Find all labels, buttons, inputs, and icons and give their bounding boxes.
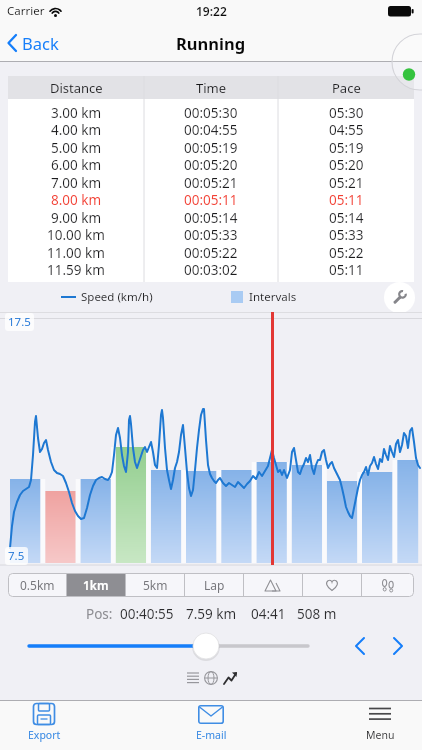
staticText: 00:40:55: [120, 605, 174, 623]
staticText: 00:04:55: [184, 121, 238, 139]
staticText: Speed (km/h): [81, 289, 153, 305]
button[interactable]: [185, 669, 239, 687]
staticText: 00:03:02: [184, 261, 238, 279]
staticText: Back: [22, 32, 59, 54]
staticText: 11.59 km: [47, 261, 105, 279]
staticText: 6.00 km: [51, 156, 102, 174]
staticText: Export: [28, 728, 61, 742]
staticText: 4.00 km: [51, 121, 102, 139]
staticText: 7.5: [8, 548, 25, 564]
staticText: 7.59 km: [186, 605, 237, 623]
staticText: 19:22: [196, 3, 227, 19]
staticText: 11.00 km: [47, 244, 105, 262]
staticText: Carrier: [7, 3, 45, 19]
staticText: 508 m: [297, 605, 337, 623]
staticText: 05:21: [329, 174, 364, 192]
staticText: Menu: [366, 728, 395, 742]
staticText: 17.5: [8, 314, 31, 330]
staticText: 10.00 km: [47, 226, 105, 244]
staticText: 05:30: [329, 104, 364, 122]
staticText: 9.00 km: [51, 209, 102, 227]
button[interactable]: [0, 632, 422, 660]
button[interactable]: 1km: [67, 573, 125, 597]
button[interactable]: Export: [18, 702, 70, 748]
staticText: 05:33: [329, 226, 364, 244]
staticText: 7.00 km: [51, 174, 102, 192]
staticText: 00:05:14: [184, 209, 238, 227]
staticText: 05:19: [329, 139, 364, 157]
staticText: 3.00 km: [51, 104, 102, 122]
staticText: 05:11: [329, 261, 364, 279]
staticText: 00:05:19: [184, 139, 238, 157]
staticText: 05:22: [329, 244, 364, 262]
button[interactable]: Back: [6, 28, 59, 58]
staticText: Pace: [332, 79, 361, 97]
button[interactable]: [303, 573, 361, 597]
staticText: 05:11: [329, 191, 364, 209]
staticText: 04:41: [251, 605, 286, 623]
staticText: 00:05:21: [184, 174, 238, 192]
staticText: 05:20: [329, 156, 364, 174]
staticText: 1km: [83, 577, 109, 593]
staticText: 00:05:30: [184, 104, 238, 122]
button[interactable]: [362, 573, 414, 597]
button[interactable]: 5km: [126, 573, 184, 597]
staticText: 05:14: [329, 209, 364, 227]
staticText: 0.5km: [20, 577, 55, 593]
staticText: 04:55: [329, 121, 364, 139]
staticText: Lap: [204, 577, 225, 593]
staticText: 00:05:11: [184, 191, 238, 209]
staticText: 5km: [143, 577, 168, 593]
button[interactable]: Lap: [185, 573, 243, 597]
button[interactable]: E-mail: [185, 702, 237, 748]
staticText: Distance: [50, 79, 103, 97]
staticText: Running: [176, 32, 246, 54]
staticText: Pos:: [86, 605, 113, 623]
button[interactable]: Menu: [354, 702, 406, 748]
staticText: Intervals: [249, 289, 297, 305]
staticText: Time: [196, 79, 227, 97]
staticText: 8.00 km: [51, 191, 102, 209]
staticText: 00:05:20: [184, 156, 238, 174]
button[interactable]: [244, 573, 302, 597]
staticText: 00:05:33: [184, 226, 238, 244]
staticText: 00:05:22: [184, 244, 238, 262]
staticText: 5.00 km: [51, 139, 102, 157]
button[interactable]: [384, 282, 415, 313]
staticText: E-mail: [196, 728, 227, 742]
button[interactable]: 0.5km: [8, 573, 66, 597]
